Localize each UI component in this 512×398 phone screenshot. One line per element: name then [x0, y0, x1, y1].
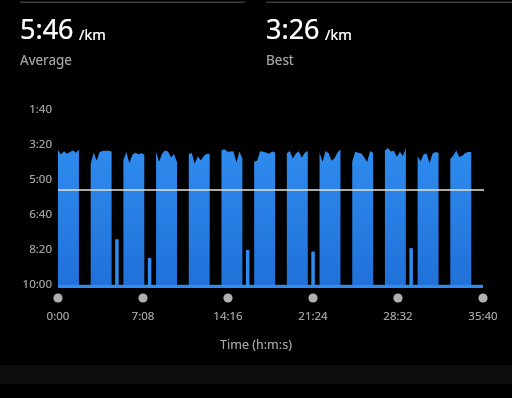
- staticText: Time (h:m:s): [156, 336, 356, 398]
- staticText: 3:20: [6, 136, 52, 398]
- staticText: Best: [266, 51, 294, 69]
- button[interactable]: 3:26: [266, 10, 352, 69]
- staticText: 21:24: [279, 308, 347, 398]
- staticText: 28:32: [364, 308, 432, 398]
- staticText: 0:00: [24, 308, 92, 398]
- staticText: 35:40: [449, 308, 512, 398]
- other: Pace over time chart: [0, 0, 512, 398]
- staticText: 6:40: [6, 206, 52, 398]
- staticText: /km: [325, 24, 352, 44]
- staticText: 5:00: [6, 171, 52, 398]
- button[interactable]: Time (h:m:s): [156, 336, 356, 398]
- staticText: 3:26: [266, 10, 320, 47]
- staticText: 7:08: [109, 308, 177, 398]
- staticText: /km: [79, 24, 106, 44]
- staticText: 5:46: [20, 10, 74, 47]
- staticText: 14:16: [194, 308, 262, 398]
- staticText: 8:20: [6, 241, 52, 398]
- button[interactable]: 5:46: [20, 10, 106, 69]
- staticText: 1:40: [6, 101, 52, 398]
- staticText: 10:00: [6, 276, 52, 398]
- staticText: Average: [20, 51, 72, 69]
